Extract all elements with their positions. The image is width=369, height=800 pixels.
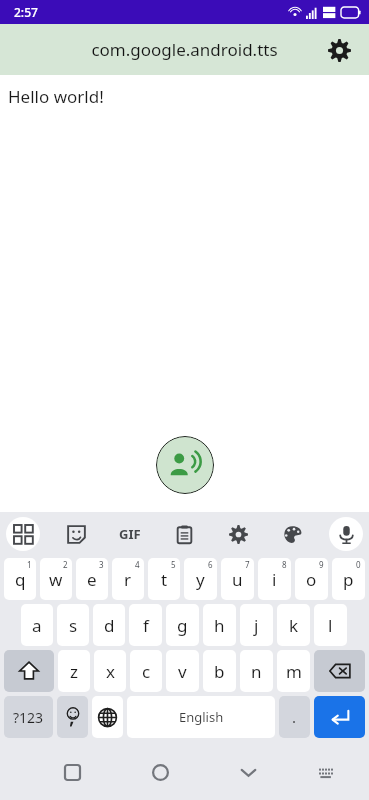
button[interactable]: Settings: [321, 32, 357, 68]
staticText: t: [161, 568, 168, 591]
button[interactable]: r: [112, 558, 144, 600]
staticText: d: [104, 614, 115, 637]
staticText: f: [143, 614, 149, 637]
staticText: 0: [356, 559, 361, 570]
staticText: y: [196, 568, 205, 591]
staticText: com.google.android.tts: [91, 38, 278, 61]
button[interactable]: Shift: [4, 650, 54, 692]
staticText: 7: [245, 559, 250, 570]
button[interactable]: o: [295, 558, 328, 600]
staticText: k: [289, 614, 299, 637]
staticText: English: [179, 708, 224, 726]
button[interactable]: j: [240, 604, 273, 646]
staticText: 6: [208, 559, 213, 570]
staticText: v: [178, 660, 187, 683]
button[interactable]: Settings: [221, 517, 255, 551]
button[interactable]: p: [332, 558, 365, 600]
staticText: b: [214, 660, 225, 683]
button[interactable]: t: [148, 558, 180, 600]
staticText: l: [328, 614, 333, 637]
button[interactable]: z: [58, 650, 90, 692]
staticText: g: [177, 614, 188, 637]
button[interactable]: m: [277, 650, 310, 692]
staticText: e: [87, 568, 97, 591]
button[interactable]: s: [57, 604, 89, 646]
button[interactable]: Apps: [6, 517, 40, 551]
staticText: 4: [135, 559, 140, 570]
button[interactable]: Backspace: [314, 650, 365, 692]
button[interactable]: Home: [140, 752, 180, 792]
staticText: h: [214, 614, 225, 637]
button[interactable]: Voice input: [329, 517, 363, 551]
staticText: s: [69, 614, 78, 637]
staticText: w: [49, 568, 63, 591]
button[interactable]: n: [240, 650, 273, 692]
staticText: 8: [282, 559, 287, 570]
button[interactable]: g: [166, 604, 199, 646]
button[interactable]: Recents: [52, 752, 92, 792]
button[interactable]: f: [129, 604, 162, 646]
button[interactable]: English: [127, 696, 275, 738]
button[interactable]: ?123: [4, 696, 53, 738]
button[interactable]: Clipboard: [167, 517, 201, 551]
staticText: 9: [319, 559, 324, 570]
button[interactable]: Emoji and comma: [57, 696, 88, 738]
button[interactable]: q: [4, 558, 36, 600]
button[interactable]: v: [166, 650, 199, 692]
staticText: u: [232, 568, 243, 591]
staticText: m: [286, 660, 302, 683]
button[interactable]: i: [258, 558, 291, 600]
button[interactable]: Enter: [314, 696, 365, 738]
staticText: 1: [27, 559, 32, 570]
staticText: x: [106, 660, 115, 683]
staticText: ?123: [13, 708, 44, 727]
button[interactable]: u: [221, 558, 254, 600]
staticText: n: [251, 660, 262, 683]
button[interactable]: k: [277, 604, 310, 646]
staticText: 3: [99, 559, 104, 570]
button[interactable]: a: [21, 604, 53, 646]
staticText: o: [306, 568, 317, 591]
button[interactable]: GIF: [113, 517, 147, 551]
staticText: j: [254, 614, 259, 637]
button[interactable]: y: [184, 558, 217, 600]
button[interactable]: l: [314, 604, 347, 646]
button[interactable]: Change language: [92, 696, 123, 738]
button[interactable]: d: [93, 604, 125, 646]
button[interactable]: Stickers: [59, 517, 93, 551]
button[interactable]: h: [203, 604, 236, 646]
button[interactable]: Hide keyboard: [228, 752, 268, 792]
button[interactable]: x: [94, 650, 126, 692]
button[interactable]: c: [130, 650, 162, 692]
button[interactable]: Switch keyboard: [309, 755, 343, 789]
staticText: q: [15, 568, 26, 591]
button[interactable]: Themes: [275, 517, 309, 551]
staticText: GIF: [119, 525, 141, 543]
staticText: .: [292, 707, 297, 727]
staticText: Hello world!: [8, 85, 104, 108]
staticText: a: [32, 614, 42, 637]
staticText: i: [272, 568, 277, 591]
button[interactable]: e: [76, 558, 108, 600]
staticText: c: [142, 660, 151, 683]
staticText: 2:57: [14, 4, 38, 20]
staticText: r: [124, 568, 132, 591]
staticText: p: [343, 568, 354, 591]
button[interactable]: Speak: [156, 436, 214, 494]
button[interactable]: b: [203, 650, 236, 692]
staticText: z: [70, 660, 78, 683]
button[interactable]: .: [279, 696, 310, 738]
button[interactable]: w: [40, 558, 72, 600]
staticText: 2: [63, 559, 68, 570]
staticText: 5: [171, 559, 176, 570]
